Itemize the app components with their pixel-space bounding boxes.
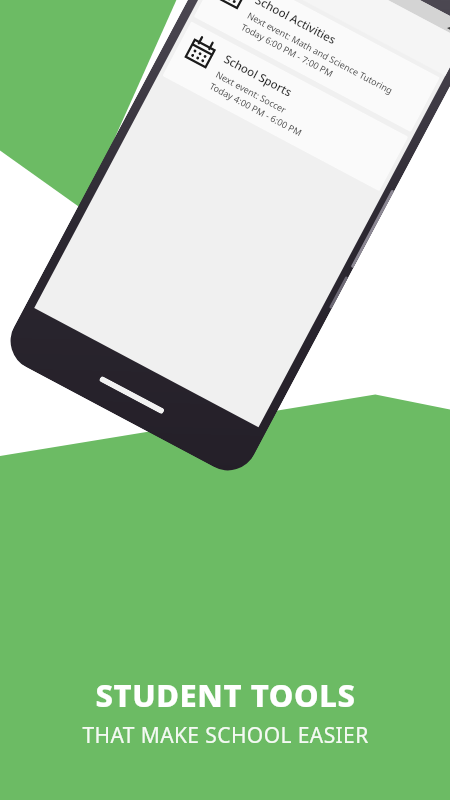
staticText: Next event: Math and Science Tutoring [245,9,395,96]
staticText: THAT MAKE SCHOOL EASIER [82,721,369,750]
staticText: Today 4:00 PM - 6:00 PM [208,79,304,138]
staticText: Next event: Soccer [214,68,289,116]
staticText: Today 6:00 PM - 7:00 PM [239,20,336,79]
button[interactable]: School Activities [194,0,440,132]
staticText: School Sports [221,51,295,100]
button[interactable]: School Sports [162,21,408,191]
staticText: STUDENT TOOLS [95,674,356,716]
staticText: School Activities [252,0,339,48]
